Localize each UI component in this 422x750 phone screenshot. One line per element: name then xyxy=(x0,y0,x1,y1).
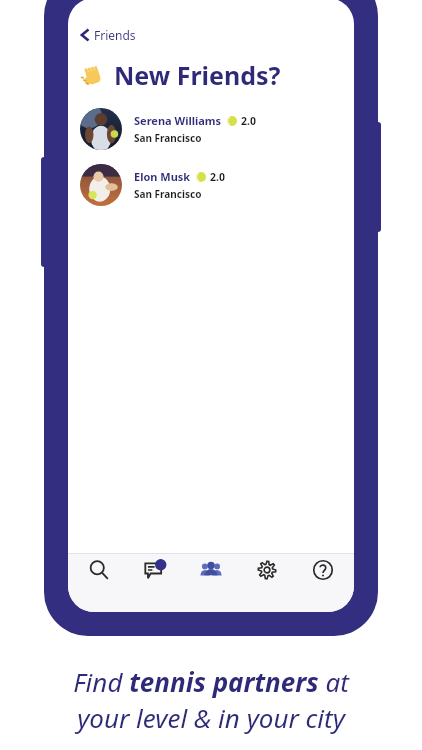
staticText: 2.0 xyxy=(241,114,256,128)
staticText: San Francisco xyxy=(134,131,202,145)
button[interactable]: Elon Musk xyxy=(68,160,354,210)
staticText: Elon Musk xyxy=(134,169,191,184)
button[interactable]: Friends xyxy=(74,24,142,46)
staticText: San Francisco xyxy=(134,187,202,201)
button[interactable]: Search xyxy=(74,554,124,594)
staticText: Friends xyxy=(94,27,136,43)
staticText: New Friends? xyxy=(114,58,281,92)
button[interactable]: Friends xyxy=(186,554,236,594)
button[interactable]: Settings xyxy=(242,554,292,594)
button[interactable]: Messages xyxy=(130,554,180,594)
button[interactable]: Help xyxy=(298,554,348,594)
staticText: Find tennis partners at your level & in … xyxy=(0,664,422,736)
button[interactable]: Serena Williams xyxy=(68,104,354,154)
staticText: 2.0 xyxy=(210,170,225,184)
staticText: Serena Williams xyxy=(134,113,222,128)
